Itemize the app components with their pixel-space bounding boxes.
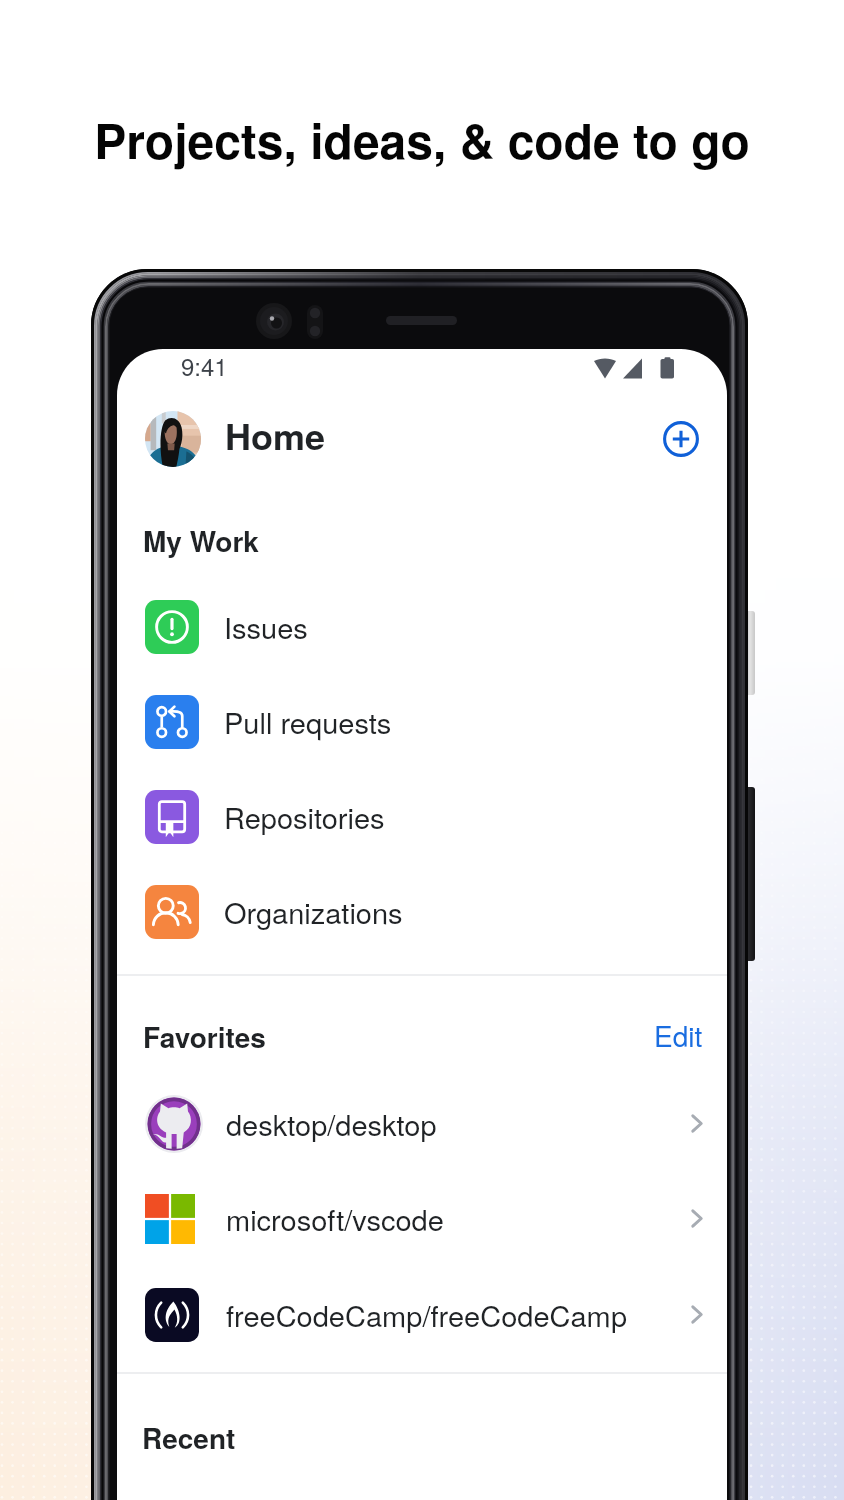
button[interactable]: microsoft/vscode	[117, 1171, 727, 1266]
staticText: Pull requests	[224, 701, 392, 743]
staticText: freeCodeCamp/freeCodeCamp	[226, 1294, 628, 1336]
button[interactable]: Organizations	[117, 864, 727, 959]
button[interactable]: Pull requests	[117, 674, 727, 769]
staticText: desktop/desktop	[226, 1103, 437, 1145]
button[interactable]: Repositories	[117, 769, 727, 864]
staticText: Favorites	[143, 1016, 266, 1056]
button[interactable]: Edit	[642, 1012, 715, 1058]
button[interactable]: Create new	[652, 410, 710, 468]
button[interactable]: Profile	[145, 411, 201, 467]
staticText: Recent	[142, 1417, 236, 1457]
button[interactable]: Issues	[117, 579, 727, 674]
staticText: Edit	[654, 1015, 703, 1055]
staticText: Organizations	[224, 891, 403, 933]
staticText: Issues	[224, 606, 308, 648]
staticText: Projects, ideas, & code to go	[94, 105, 750, 174]
staticText: Repositories	[224, 796, 385, 838]
staticText: Home	[225, 409, 326, 461]
staticText: My Work	[143, 520, 259, 560]
staticText: 9:41	[181, 349, 228, 382]
button[interactable]: freeCodeCamp/freeCodeCamp	[117, 1267, 727, 1362]
staticText: microsoft/vscode	[226, 1198, 444, 1240]
button[interactable]: desktop/desktop	[117, 1076, 727, 1171]
